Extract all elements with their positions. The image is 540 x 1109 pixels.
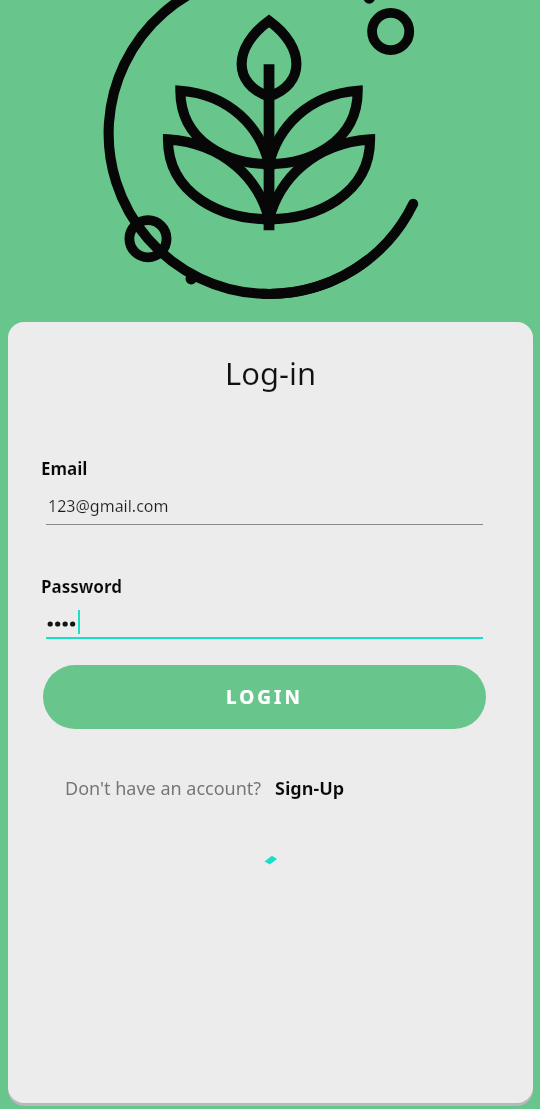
button[interactable]: 123@gmail.com: [46, 495, 483, 525]
staticText: LOGIN: [226, 684, 303, 710]
button[interactable]: LOGIN: [43, 665, 486, 729]
staticText: 123@gmail.com: [48, 495, 169, 517]
staticText: Sign-Up: [275, 776, 345, 801]
staticText: Log-in: [8, 352, 533, 394]
button[interactable]: Sign-Up: [275, 776, 345, 801]
other: App logo: [107, 0, 433, 310]
button[interactable]: [46, 609, 483, 639]
staticText: Email: [41, 457, 88, 480]
staticText: Don't have an account?: [65, 776, 262, 801]
staticText: Password: [41, 575, 122, 598]
